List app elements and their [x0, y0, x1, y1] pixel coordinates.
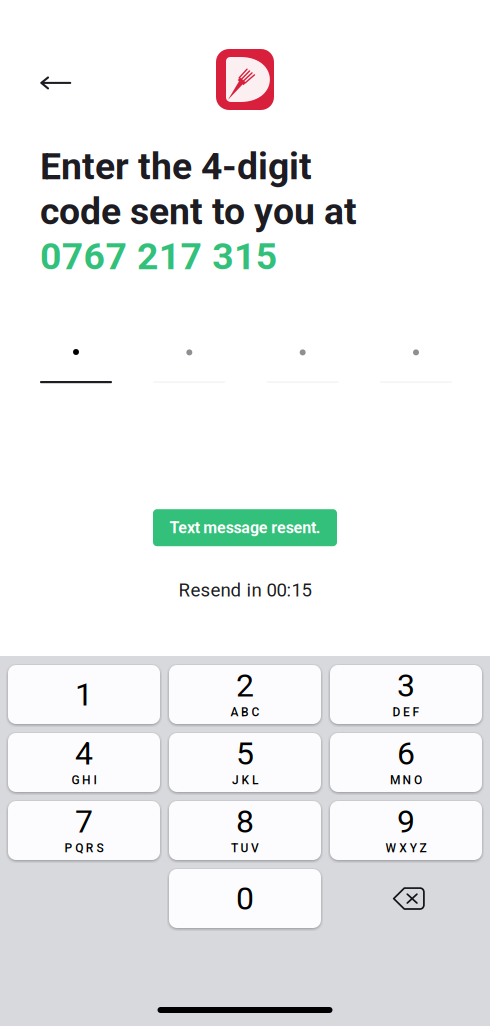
staticText: JKL	[232, 773, 258, 787]
button[interactable]: Delete	[330, 869, 482, 928]
staticText: Enter the 4-digit	[40, 145, 312, 188]
button[interactable]: 6	[330, 733, 482, 792]
staticText: 9	[397, 803, 415, 840]
staticText: 0	[236, 880, 254, 917]
staticText: 4	[75, 735, 93, 772]
staticText: TUV	[231, 841, 259, 855]
staticText: ABC	[230, 705, 260, 719]
staticText: DEF	[392, 705, 420, 719]
button[interactable]: 8	[169, 801, 321, 860]
button[interactable]: 2	[169, 665, 321, 724]
staticText: 8	[236, 803, 254, 840]
staticText: PQRS	[65, 841, 103, 855]
staticText: 5	[236, 735, 254, 772]
staticText: 0767 217 315	[40, 235, 277, 278]
staticText: GHI	[71, 773, 97, 787]
staticText: 2	[236, 667, 254, 704]
staticText: 7	[75, 803, 93, 840]
staticText: code sent to you at	[40, 190, 357, 233]
staticText: 6	[397, 735, 415, 772]
staticText: 3	[397, 667, 415, 704]
staticText: MNO	[390, 773, 422, 787]
button[interactable]: 3	[330, 665, 482, 724]
staticText: 1	[75, 676, 93, 713]
button[interactable]: 7	[8, 801, 160, 860]
button[interactable]: 1	[8, 665, 160, 724]
button[interactable]: 0	[169, 869, 321, 928]
staticText: Text message resent.	[169, 518, 321, 537]
button[interactable]: 9	[330, 801, 482, 860]
button[interactable]: 4	[8, 733, 160, 792]
button[interactable]: Back	[28, 60, 83, 98]
staticText: WXYZ	[386, 841, 426, 855]
staticText: Resend in 00:15	[178, 579, 311, 601]
button[interactable]: 5	[169, 733, 321, 792]
